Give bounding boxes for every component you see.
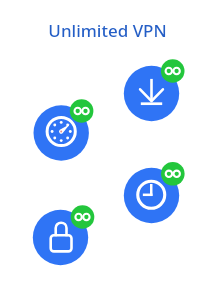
staticText: Unlimited VPN	[0, 19, 215, 42]
